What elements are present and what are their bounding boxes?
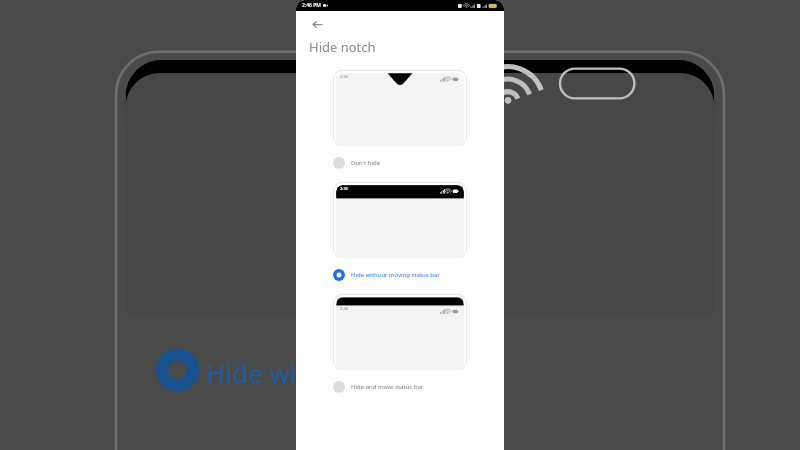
staticText: Hide notch [309, 38, 376, 56]
button[interactable]: Hide without moving status bar [333, 264, 467, 286]
button[interactable]: 2:36 [333, 294, 467, 370]
button[interactable]: Hide and move status bar [333, 376, 467, 398]
staticText: Hide and move status bar [351, 383, 424, 391]
staticText: Hide without moving status bar [351, 271, 440, 279]
staticText: 2:36 [340, 186, 348, 191]
staticText: 2:46 PM [302, 2, 321, 9]
button[interactable]: Don't hide [333, 152, 467, 174]
staticText: Hide with [206, 355, 322, 390]
button[interactable]: 2:36 [333, 70, 467, 146]
staticText: 2:36 [340, 306, 348, 311]
button[interactable]: Back [306, 13, 328, 35]
staticText: 2:36 [340, 74, 348, 79]
staticText: Don't hide [351, 159, 381, 167]
button[interactable]: 2:36 [333, 182, 467, 258]
